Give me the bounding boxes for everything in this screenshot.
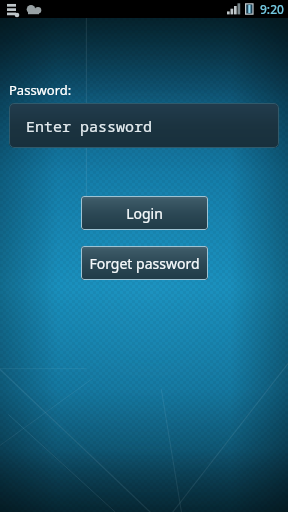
staticText: Forget password (89, 254, 200, 273)
staticText: Password: (9, 81, 72, 99)
staticText: Enter password (26, 116, 153, 136)
staticText: Login (126, 204, 163, 223)
button[interactable]: Enter password (9, 103, 279, 148)
staticText: 9:20 (260, 1, 284, 17)
button[interactable]: Login (81, 196, 208, 230)
button[interactable]: Forget password (81, 246, 208, 280)
